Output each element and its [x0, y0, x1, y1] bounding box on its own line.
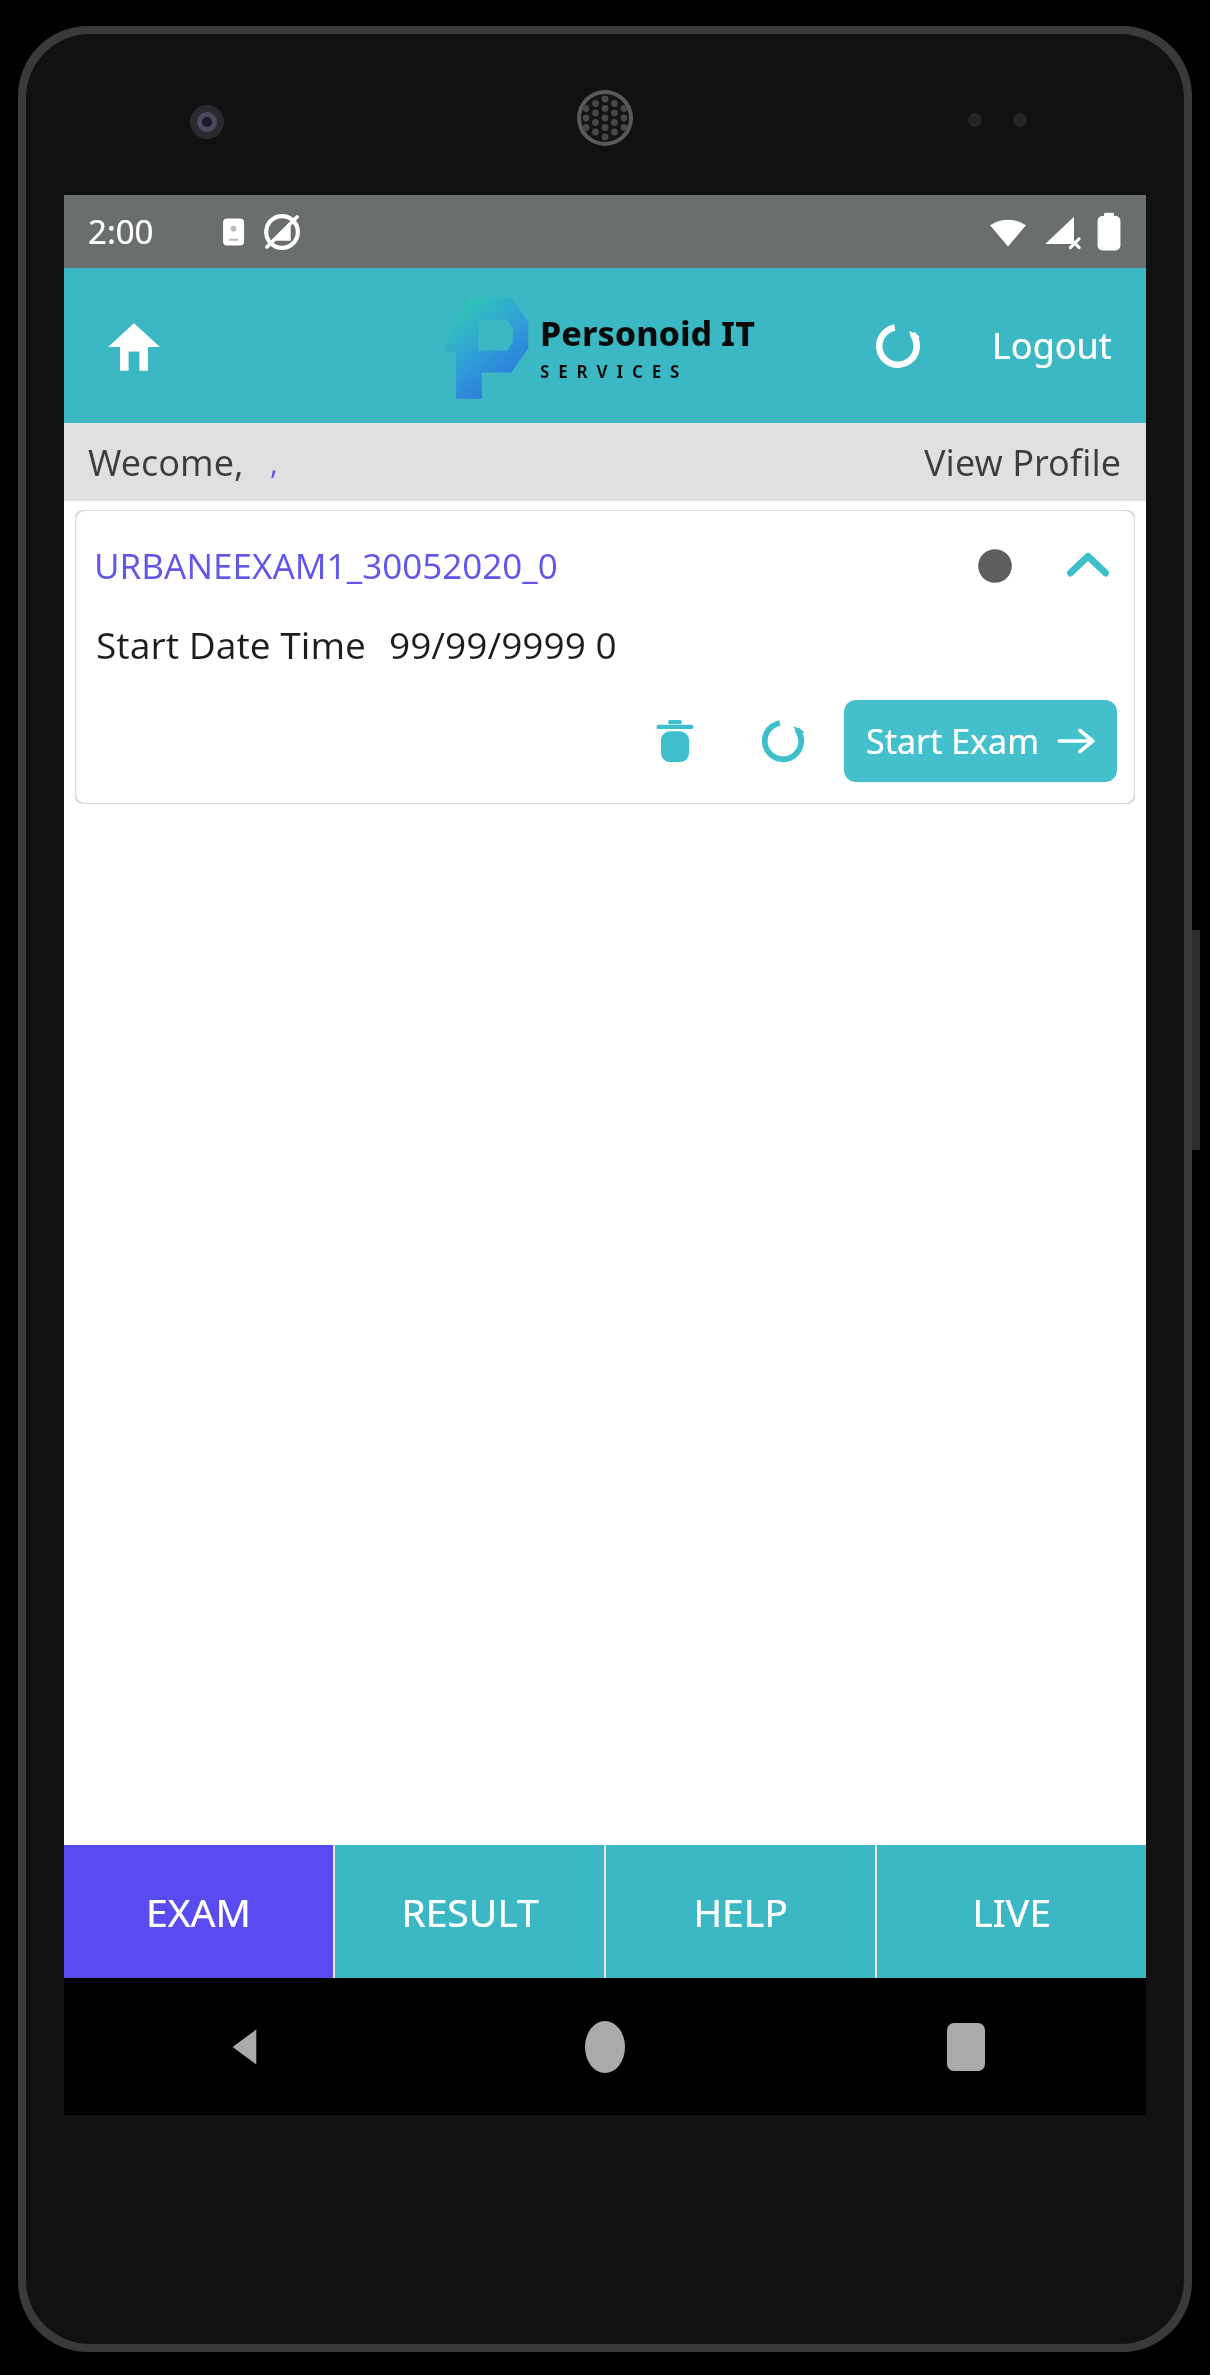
button[interactable]: Start Exam	[844, 700, 1117, 782]
staticText: S E R V I C E S	[540, 360, 680, 383]
button[interactable]: RESULT	[335, 1845, 604, 1978]
staticText: Wecome,	[88, 438, 244, 487]
staticText: Start Date Time	[96, 619, 366, 669]
staticText: LIVE	[972, 1885, 1051, 1938]
other: Status	[975, 546, 1015, 586]
button[interactable]: Collapse	[1059, 537, 1117, 595]
button[interactable]: Logout	[984, 311, 1120, 380]
staticText: Personoid IT	[540, 310, 755, 356]
button[interactable]: Home	[424, 1978, 785, 2115]
button[interactable]: Home	[98, 310, 170, 382]
button[interactable]: EXAM	[64, 1845, 333, 1978]
staticText: ,	[270, 442, 279, 483]
staticText: 99/99/9999 0	[389, 619, 617, 669]
staticText: RESULT	[401, 1885, 539, 1938]
button[interactable]: URBANEEXAM1_30052020_0	[94, 542, 558, 590]
button[interactable]: View Profile	[918, 430, 1128, 495]
button[interactable]: Refresh exam	[746, 704, 820, 778]
button[interactable]: Recent apps	[785, 1978, 1146, 2115]
button[interactable]: HELP	[606, 1845, 875, 1978]
button[interactable]: Back	[64, 1978, 424, 2115]
button[interactable]: Refresh	[862, 310, 934, 382]
staticText: HELP	[693, 1885, 788, 1938]
staticText: Start Exam	[866, 718, 1039, 764]
staticText: View Profile	[924, 438, 1122, 487]
staticText: 2:00	[88, 209, 154, 254]
button[interactable]: LIVE	[877, 1845, 1146, 1978]
button[interactable]: Delete	[638, 704, 712, 778]
staticText: Logout	[992, 321, 1112, 370]
staticText: EXAM	[146, 1885, 251, 1938]
